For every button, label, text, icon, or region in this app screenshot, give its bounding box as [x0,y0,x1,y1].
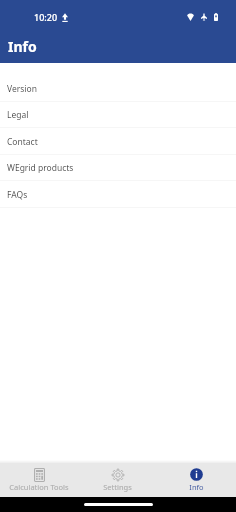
staticText: 10:20 [34,11,58,23]
staticText: Calculation Tools [9,482,69,492]
staticText: Contact [7,136,38,148]
staticText: FAQs [7,189,28,201]
staticText: Settings [103,482,132,492]
button[interactable]: Info [157,463,236,497]
button[interactable]: Version [0,75,236,102]
button[interactable]: Legal [0,101,236,128]
button[interactable]: FAQs [0,181,236,208]
button[interactable]: Settings [78,463,157,497]
button[interactable]: Calculation Tools [0,463,78,497]
button[interactable]: Contact [0,128,236,155]
staticText: Info [8,37,37,56]
staticText: Info [189,482,204,492]
staticText: Legal [7,109,29,121]
staticText: Version [7,83,37,95]
button[interactable]: WEgrid products [0,154,236,181]
staticText: WEgrid products [7,162,74,174]
